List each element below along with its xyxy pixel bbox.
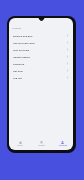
button[interactable]: Get help — [9, 67, 73, 74]
button[interactable]: Visit our team — [9, 46, 73, 53]
button[interactable]: Log out — [9, 74, 73, 81]
staticText: Home — [17, 144, 23, 147]
button[interactable]: Balance and bills — [9, 32, 73, 39]
staticText: Update details — [13, 55, 30, 58]
staticText: Add and edit cards — [13, 41, 35, 44]
staticText: Account — [59, 144, 67, 147]
button[interactable]: Add and edit cards — [9, 39, 73, 46]
button[interactable]: Password — [9, 60, 73, 67]
staticText: Get help — [13, 69, 23, 72]
staticText: Visit our team — [13, 48, 30, 51]
button[interactable]: Account — [52, 136, 73, 147]
button[interactable]: Home — [9, 136, 31, 147]
staticText: Password — [13, 62, 25, 65]
staticText: Balance and bills — [13, 34, 33, 37]
button[interactable]: Tickets — [31, 136, 52, 147]
staticText: Account — [12, 26, 22, 29]
button[interactable]: Update details — [9, 53, 73, 60]
staticText: Tickets — [38, 144, 45, 147]
staticText: Log out — [13, 76, 22, 79]
